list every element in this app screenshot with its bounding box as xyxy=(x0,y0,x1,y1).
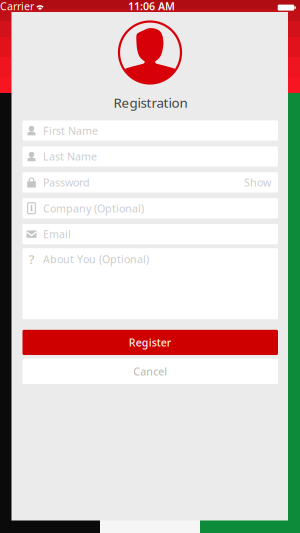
staticText: Company (Optional) xyxy=(43,201,144,215)
button[interactable]: Password xyxy=(22,172,278,192)
staticText: Carrier xyxy=(0,0,34,13)
staticText: About You (Optional) xyxy=(43,252,149,266)
staticText: 11:06 AM xyxy=(128,0,175,13)
staticText: Last Name xyxy=(43,149,97,164)
button[interactable]: First Name xyxy=(22,120,278,141)
staticText: First Name xyxy=(43,123,98,138)
staticText: Show xyxy=(244,175,271,189)
button[interactable]: Cancel xyxy=(22,358,278,384)
staticText: Cancel xyxy=(133,364,167,378)
staticText: Email xyxy=(43,227,71,241)
button[interactable]: Last Name xyxy=(22,146,278,167)
button[interactable]: Register xyxy=(22,330,278,355)
button[interactable]: ? xyxy=(22,248,278,319)
staticText: Registration xyxy=(113,94,187,111)
button[interactable]: Company (Optional) xyxy=(22,198,278,218)
staticText: Register xyxy=(129,335,172,349)
button[interactable]: Email xyxy=(22,224,278,244)
staticText: ? xyxy=(28,250,34,268)
staticText: Password xyxy=(43,175,90,189)
